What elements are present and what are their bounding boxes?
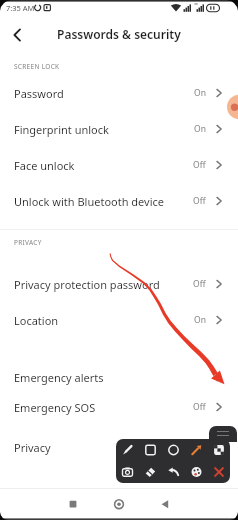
staticText: Location bbox=[14, 313, 59, 328]
button[interactable] bbox=[162, 439, 185, 461]
button[interactable] bbox=[208, 439, 230, 461]
staticText: SCREEN LOCK bbox=[14, 62, 60, 71]
staticText: Face unlock bbox=[14, 158, 75, 173]
button[interactable]: Privacy protection password bbox=[0, 266, 238, 302]
button[interactable] bbox=[226, 94, 238, 120]
staticText: On bbox=[194, 314, 206, 326]
button[interactable] bbox=[209, 426, 237, 442]
button[interactable] bbox=[145, 488, 185, 520]
button[interactable] bbox=[162, 461, 185, 483]
staticText: Off bbox=[193, 401, 206, 413]
button[interactable] bbox=[116, 439, 139, 461]
staticText: Off bbox=[193, 159, 206, 171]
staticText: On bbox=[194, 123, 206, 135]
staticText: Password bbox=[14, 86, 64, 101]
staticText: Emergency alerts bbox=[14, 370, 104, 385]
staticText: PRIVACY bbox=[14, 238, 42, 247]
button[interactable]: Unlock with Bluetooth device bbox=[0, 183, 238, 219]
button[interactable] bbox=[139, 439, 162, 461]
button[interactable] bbox=[53, 488, 93, 520]
button[interactable] bbox=[185, 439, 208, 461]
button[interactable]: Location bbox=[0, 302, 238, 338]
staticText: Privacy protection password bbox=[14, 277, 160, 292]
button[interactable] bbox=[116, 461, 139, 483]
staticText: 7:35 AM bbox=[6, 3, 35, 13]
button[interactable] bbox=[99, 488, 139, 520]
button[interactable]: Privacy bbox=[0, 429, 238, 465]
staticText: Passwords & security bbox=[57, 26, 181, 42]
button[interactable]: Face unlock bbox=[0, 147, 238, 183]
staticText: Fingerprint unlock bbox=[14, 122, 109, 137]
staticText: Off bbox=[193, 195, 206, 207]
staticText: Off bbox=[193, 278, 206, 290]
staticText: Emergency SOS bbox=[14, 400, 96, 415]
button[interactable] bbox=[6, 25, 28, 45]
button[interactable] bbox=[208, 461, 230, 483]
button[interactable]: Password bbox=[0, 75, 238, 111]
staticText: On bbox=[194, 87, 206, 99]
button[interactable]: Emergency SOS bbox=[0, 389, 238, 425]
staticText: Unlock with Bluetooth device bbox=[14, 194, 165, 209]
button[interactable] bbox=[139, 461, 162, 483]
staticText: Privacy bbox=[14, 440, 51, 455]
button[interactable]: Emergency alerts bbox=[0, 359, 238, 395]
button[interactable]: Fingerprint unlock bbox=[0, 111, 238, 147]
button[interactable] bbox=[185, 461, 208, 483]
